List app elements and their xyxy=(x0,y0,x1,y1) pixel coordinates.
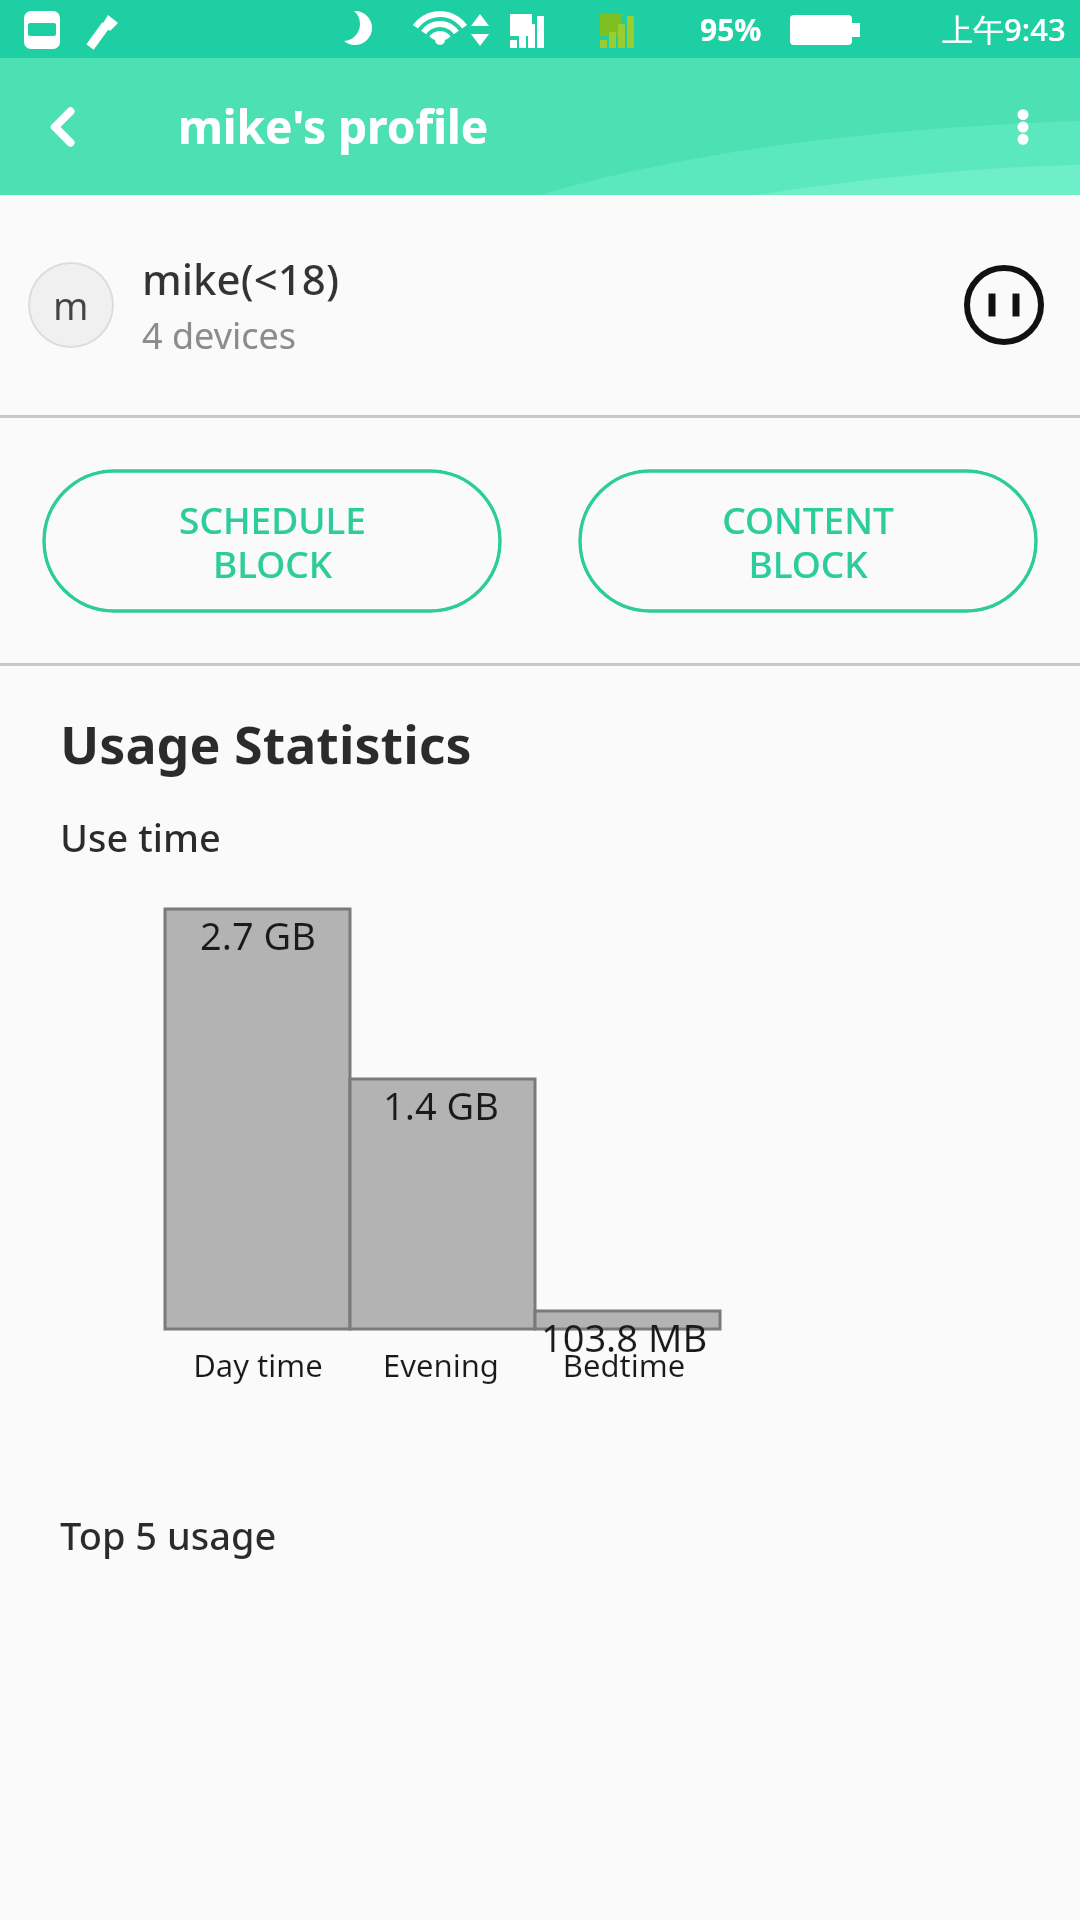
staticText: Evening xyxy=(331,1344,551,1386)
button[interactable]: Pause internet xyxy=(956,257,1052,353)
staticText: Usage Statistics xyxy=(60,708,472,779)
button[interactable]: More options xyxy=(978,82,1068,172)
button[interactable]: SCHEDULE BLOCK xyxy=(42,469,502,613)
staticText: mike(<18) xyxy=(142,250,339,307)
staticText: SCHEDULE BLOCK xyxy=(179,494,366,588)
staticText: Day time xyxy=(148,1344,368,1386)
staticText: 2.7 GB xyxy=(148,909,368,961)
staticText: 4 devices xyxy=(142,311,297,360)
staticText: m xyxy=(53,279,89,331)
staticText: CONTENT BLOCK xyxy=(722,494,894,588)
staticText: Bedtime xyxy=(514,1344,734,1386)
staticText: 1.4 GB xyxy=(331,1079,551,1131)
button[interactable]: Back xyxy=(20,82,110,172)
button[interactable]: m xyxy=(0,195,1080,415)
staticText: 95% xyxy=(700,9,762,50)
button[interactable]: CONTENT BLOCK xyxy=(578,469,1038,613)
staticText: 上午9:43 xyxy=(942,8,1066,50)
staticText: Use time xyxy=(60,811,221,863)
staticText: Top 5 usage xyxy=(60,1509,277,1561)
staticText: 103.8 MB xyxy=(514,1311,734,1363)
staticText: mike's profile xyxy=(178,95,489,158)
